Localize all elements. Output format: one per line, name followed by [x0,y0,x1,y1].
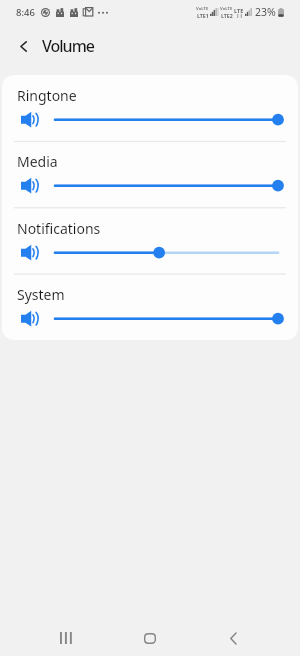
staticText: System [17,285,65,304]
staticText: VoLTE [196,6,209,12]
staticText: 8:46 [16,6,35,19]
staticText: Media [17,152,58,171]
button[interactable]: Navigate up [9,32,37,60]
staticText: Ringtone [17,86,77,105]
staticText: LTE1 [197,12,209,19]
button[interactable]: Notifications [2,208,298,274]
button[interactable]: Media [2,141,298,207]
staticText: VoLTE [220,6,233,12]
button[interactable]: System [2,274,298,340]
button[interactable]: Recent apps [44,616,88,656]
button[interactable]: Home [128,616,172,656]
button[interactable]: Ringtone [2,75,298,141]
staticText: Volume [42,35,94,57]
staticText: 23% [255,5,276,19]
staticText: LTE2 [221,12,233,19]
staticText: Notifications [17,219,101,238]
staticText: LTE [234,7,244,14]
button[interactable]: Back [211,616,255,656]
